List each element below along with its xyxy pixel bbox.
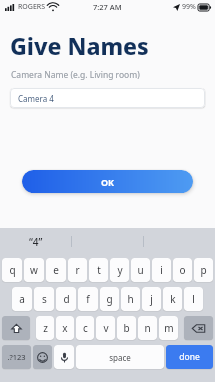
button[interactable]: u: [131, 258, 150, 282]
button[interactable]: r: [68, 258, 87, 282]
button[interactable]: x: [56, 316, 74, 340]
button[interactable]: a: [12, 287, 32, 311]
staticText: ROGERS: [18, 2, 46, 12]
button[interactable]: e: [46, 258, 66, 282]
button[interactable]: y: [110, 258, 129, 282]
staticText: v: [103, 321, 109, 335]
staticText: z: [43, 321, 48, 335]
button[interactable]: i: [152, 258, 171, 282]
staticText: d: [63, 292, 70, 306]
staticText: m: [164, 321, 174, 335]
button[interactable]: h: [121, 287, 140, 311]
button[interactable]: b: [117, 316, 136, 340]
button[interactable]: p: [194, 258, 213, 282]
button[interactable]: OK: [22, 170, 193, 193]
staticText: o: [179, 263, 186, 277]
staticText: Camera 4: [18, 93, 54, 104]
staticText: k: [170, 292, 176, 306]
button[interactable]: k: [163, 287, 182, 311]
staticText: Camera Name (e.g. Living room): [11, 69, 140, 81]
staticText: e: [53, 263, 59, 277]
button[interactable]: Voice input: [54, 345, 74, 369]
staticText: j: [150, 292, 153, 306]
button[interactable]: f: [78, 287, 98, 311]
button[interactable]: v: [96, 316, 115, 340]
button[interactable]: j: [142, 287, 161, 311]
staticText: b: [123, 321, 130, 335]
button[interactable]: s: [34, 287, 54, 311]
staticText: p: [200, 263, 207, 277]
button[interactable]: done: [166, 345, 213, 369]
staticText: g: [106, 292, 113, 306]
button[interactable]: Camera 4: [10, 88, 205, 108]
staticText: done: [179, 351, 200, 363]
staticText: w: [30, 263, 38, 277]
staticText: l: [192, 292, 195, 306]
staticText: u: [137, 263, 144, 277]
staticText: f: [86, 292, 90, 306]
staticText: n: [144, 321, 151, 335]
staticText: c: [83, 321, 88, 335]
button[interactable]: z: [36, 316, 54, 340]
staticText: s: [42, 292, 47, 306]
button[interactable]: g: [100, 287, 119, 311]
staticText: y: [117, 263, 123, 277]
staticText: Give Names: [10, 30, 149, 61]
button[interactable]: m: [159, 316, 178, 340]
staticText: OK: [101, 176, 115, 188]
staticText: .?123: [7, 352, 26, 362]
button[interactable]: Emoji: [33, 345, 52, 369]
staticText: 7:27 AM: [93, 2, 122, 12]
button[interactable]: Backspace: [184, 316, 213, 340]
staticText: space: [109, 352, 131, 363]
button[interactable]: q: [2, 258, 22, 282]
staticText: h: [127, 292, 134, 306]
button[interactable]: w: [24, 258, 44, 282]
staticText: r: [75, 263, 80, 277]
button[interactable]: d: [56, 287, 76, 311]
button[interactable]: c: [76, 316, 94, 340]
button[interactable]: t: [89, 258, 108, 282]
button[interactable]: “4”: [0, 228, 71, 255]
staticText: “4”: [29, 235, 43, 249]
staticText: i: [160, 263, 163, 277]
staticText: q: [9, 263, 16, 277]
button[interactable]: o: [173, 258, 192, 282]
button[interactable]: l: [184, 287, 203, 311]
staticText: x: [62, 321, 68, 335]
button[interactable]: space: [76, 345, 164, 369]
staticText: t: [97, 263, 101, 277]
staticText: a: [19, 292, 25, 306]
button[interactable]: Shift: [2, 316, 30, 340]
button[interactable]: .?123: [2, 345, 31, 369]
staticText: 99%: [182, 2, 196, 12]
button[interactable]: n: [138, 316, 157, 340]
